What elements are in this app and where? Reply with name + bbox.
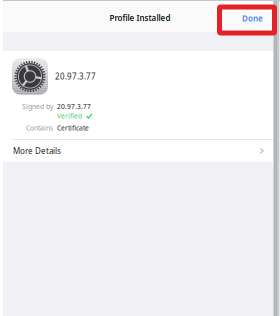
staticText: More Details [13,145,61,156]
staticText: Signed by [22,102,53,111]
button[interactable]: Done [236,8,269,29]
staticText: 20.97.3.77 [57,102,91,111]
staticText: Profile Installed [109,13,170,23]
button[interactable]: More Details [0,140,280,162]
staticText: 20.97.3.77 [55,71,96,82]
staticText: Certificate [57,124,89,132]
staticText: Verified [57,112,82,120]
staticText: Done [242,13,263,24]
staticText: Contains [26,124,53,132]
